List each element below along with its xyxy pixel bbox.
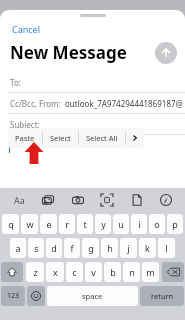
- button[interactable]: Subject:: [0, 114, 185, 134]
- button[interactable]: l: [158, 238, 175, 258]
- button[interactable]: x: [46, 262, 64, 282]
- button[interactable]: Cc/Bcc, From:: [0, 93, 185, 113]
- staticText: t: [83, 218, 87, 230]
- staticText: space: [82, 291, 103, 301]
- button[interactable]: p: [167, 214, 183, 234]
- button[interactable]: To:: [0, 72, 185, 92]
- button[interactable]: Backspace: [162, 262, 184, 282]
- staticText: Cancel: [12, 23, 41, 35]
- staticText: p: [172, 218, 178, 230]
- staticText: outlook_7A974294441869187@outlook.com: [65, 98, 185, 109]
- button[interactable]: Cancel: [10, 21, 43, 37]
- button[interactable]: f: [64, 238, 80, 258]
- staticText: New Message: [10, 41, 155, 64]
- button[interactable]: m: [142, 262, 159, 282]
- staticText: s: [34, 242, 39, 254]
- button[interactable]: Paste: [8, 128, 42, 148]
- button[interactable]: s: [28, 238, 44, 258]
- staticText: Select: [50, 133, 71, 143]
- button[interactable]: Document: [126, 190, 148, 210]
- staticText: h: [107, 242, 113, 254]
- button[interactable]: t: [77, 214, 93, 234]
- button[interactable]: Text format: [8, 190, 30, 210]
- staticText: l: [165, 242, 168, 254]
- staticText: e: [46, 218, 52, 230]
- staticText: q: [8, 218, 14, 230]
- button[interactable]: Markup: [155, 190, 177, 210]
- staticText: 123: [7, 291, 20, 301]
- staticText: j: [127, 242, 130, 254]
- staticText: return: [151, 291, 174, 301]
- button[interactable]: v: [85, 262, 102, 282]
- staticText: Cc/Bcc, From:: [10, 98, 61, 109]
- button[interactable]: a: [10, 238, 26, 258]
- button[interactable]: Emoji: [27, 286, 45, 306]
- button[interactable]: g: [82, 238, 99, 258]
- button[interactable]: d: [46, 238, 62, 258]
- button[interactable]: o: [149, 214, 165, 234]
- button[interactable]: z: [26, 262, 44, 282]
- staticText: a: [15, 242, 21, 254]
- staticText: g: [88, 242, 94, 254]
- staticText: Select All: [86, 133, 118, 143]
- staticText: z: [33, 266, 38, 278]
- button[interactable]: i: [131, 214, 147, 234]
- button[interactable]: Select All: [79, 128, 125, 148]
- button[interactable]: Scan: [96, 190, 118, 210]
- button[interactable]: Send: [155, 42, 177, 64]
- button[interactable]: space: [47, 286, 138, 306]
- button[interactable]: c: [66, 262, 83, 282]
- button[interactable]: Shift: [1, 262, 23, 282]
- staticText: o: [154, 218, 160, 230]
- button[interactable]: More: [126, 128, 144, 148]
- staticText: w: [26, 218, 34, 230]
- button[interactable]: q: [2, 214, 19, 234]
- button[interactable]: k: [139, 238, 156, 258]
- button[interactable]: return: [140, 286, 184, 306]
- button[interactable]: Select: [43, 128, 78, 148]
- button[interactable]: h: [101, 238, 118, 258]
- staticText: v: [91, 266, 96, 278]
- button[interactable]: Camera: [67, 190, 89, 210]
- button[interactable]: y: [95, 214, 111, 234]
- staticText: Aa: [14, 194, 25, 206]
- staticText: n: [129, 266, 135, 278]
- button[interactable]: n: [123, 262, 140, 282]
- staticText: f: [70, 242, 74, 254]
- staticText: b: [110, 266, 116, 278]
- button[interactable]: b: [104, 262, 121, 282]
- button[interactable]: u: [113, 214, 129, 234]
- button[interactable]: r: [59, 214, 75, 234]
- staticText: d: [51, 242, 57, 254]
- staticText: c: [72, 266, 77, 278]
- staticText: y: [101, 218, 106, 230]
- staticText: x: [53, 266, 58, 278]
- staticText: To:: [10, 77, 21, 88]
- button[interactable]: e: [40, 214, 57, 234]
- staticText: u: [118, 218, 124, 230]
- staticText: k: [145, 242, 150, 254]
- staticText: Subject:: [10, 119, 40, 130]
- button[interactable]: j: [120, 238, 137, 258]
- staticText: m: [146, 266, 155, 278]
- staticText: r: [65, 218, 69, 230]
- staticText: i: [138, 218, 141, 230]
- button[interactable]: 123: [1, 286, 25, 306]
- staticText: Paste: [15, 133, 35, 143]
- button[interactable]: w: [21, 214, 38, 234]
- button[interactable]: Photos: [37, 190, 59, 210]
